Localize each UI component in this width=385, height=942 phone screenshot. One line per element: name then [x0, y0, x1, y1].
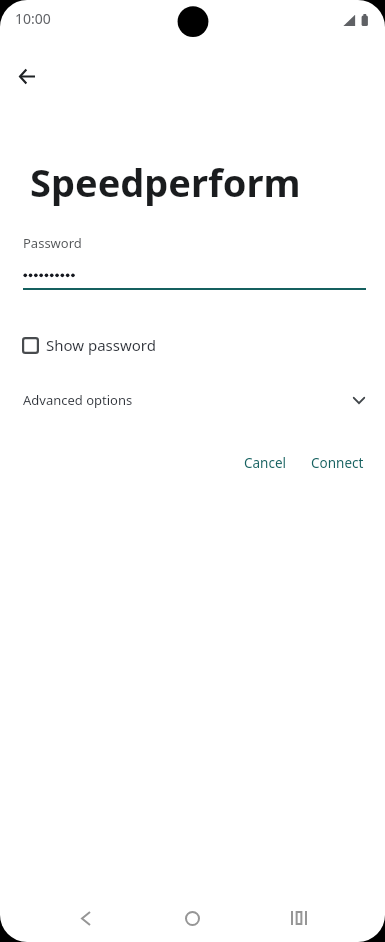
button[interactable]: Cancel: [232, 447, 299, 479]
staticText: Advanced options: [23, 391, 133, 409]
staticText: Cancel: [244, 454, 287, 472]
button[interactable]: Connect: [299, 447, 376, 479]
button[interactable]: Advanced options: [0, 384, 385, 416]
button[interactable]: Home: [168, 894, 216, 942]
button[interactable]: Show password: [14, 329, 166, 361]
button[interactable]: Navigate up: [6, 56, 47, 97]
staticText: 10:00: [15, 9, 51, 28]
staticText: Password: [23, 234, 82, 252]
staticText: Connect: [311, 454, 364, 472]
staticText: Speedperform: [30, 156, 301, 208]
button[interactable]: Recent apps: [275, 894, 323, 942]
button[interactable]: Back: [62, 894, 110, 942]
staticText: Show password: [46, 335, 156, 355]
